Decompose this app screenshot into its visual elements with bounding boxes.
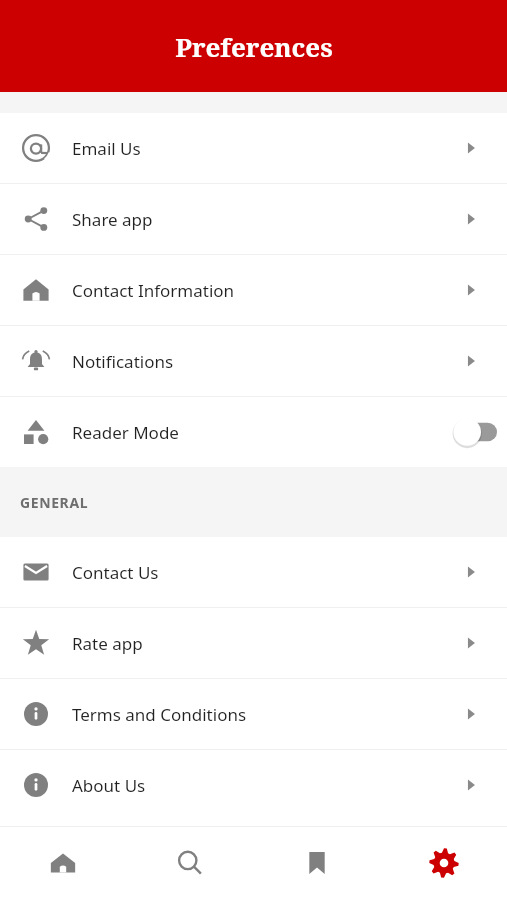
staticText: Email Us bbox=[72, 137, 435, 160]
button[interactable]: Terms and Conditions bbox=[0, 679, 507, 749]
staticText: Preferences bbox=[175, 29, 333, 64]
button[interactable]: Contact Information bbox=[0, 255, 507, 325]
button[interactable]: Bookmarks bbox=[253, 826, 380, 900]
button[interactable]: Reader Mode bbox=[0, 397, 507, 467]
staticText: GENERAL bbox=[20, 493, 89, 512]
button[interactable]: Rate app bbox=[0, 608, 507, 678]
button[interactable]: Email Us bbox=[0, 113, 507, 183]
staticText: Contact Us bbox=[72, 561, 435, 584]
button[interactable]: Settings bbox=[380, 826, 507, 900]
button[interactable]: Home bbox=[0, 826, 126, 900]
staticText: Notifications bbox=[72, 350, 435, 373]
button[interactable]: Contact Us bbox=[0, 537, 507, 607]
staticText: Rate app bbox=[72, 632, 435, 655]
staticText: Reader Mode bbox=[72, 421, 435, 444]
button[interactable]: Share app bbox=[0, 184, 507, 254]
staticText: Share app bbox=[72, 208, 435, 231]
button[interactable]: Notifications bbox=[0, 326, 507, 396]
staticText: Contact Information bbox=[72, 279, 435, 302]
button[interactable]: Search bbox=[126, 826, 253, 900]
staticText: About Us bbox=[72, 774, 435, 797]
staticText: Terms and Conditions bbox=[72, 703, 435, 726]
button[interactable]: About Us bbox=[0, 750, 507, 820]
